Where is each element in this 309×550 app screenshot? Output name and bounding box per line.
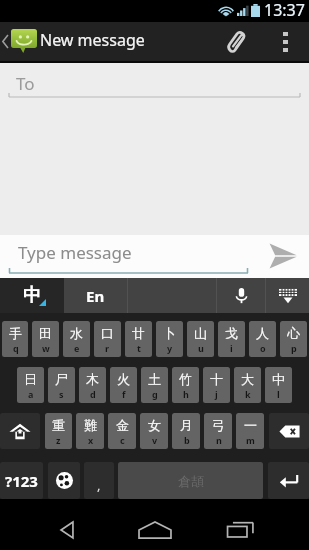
staticText: 火 — [117, 371, 130, 387]
button[interactable]: Recent apps — [199, 499, 287, 550]
button[interactable]: 火 — [110, 367, 137, 403]
button[interactable]: More options — [262, 22, 309, 61]
staticText: 難 — [84, 417, 97, 433]
staticText: i — [230, 342, 233, 354]
staticText: ?123 — [5, 471, 38, 491]
staticText: w — [42, 342, 50, 354]
staticText: u — [198, 342, 204, 354]
staticText: En — [86, 286, 105, 306]
button[interactable]: Send — [249, 235, 309, 278]
button[interactable]: 手 — [2, 321, 28, 357]
staticText: 13:37 — [264, 0, 305, 21]
button[interactable]: 十 — [203, 367, 230, 403]
button[interactable]: Back — [23, 499, 111, 550]
button[interactable]: 日 — [17, 367, 44, 403]
button[interactable]: 口 — [94, 321, 121, 357]
button[interactable]: En — [64, 278, 127, 313]
button[interactable]: 金 — [108, 413, 136, 449]
button[interactable]: 山 — [187, 321, 214, 357]
button[interactable]: 田 — [32, 321, 59, 357]
staticText: To — [16, 72, 35, 95]
staticText: 中 — [272, 371, 285, 387]
staticText: 山 — [194, 325, 207, 341]
staticText: 戈 — [225, 325, 238, 341]
staticText: e — [74, 342, 80, 354]
button[interactable]: ?123 — [0, 462, 43, 499]
button[interactable]: Enter — [268, 462, 309, 499]
staticText: 田 — [39, 325, 52, 341]
button[interactable]: 尸 — [48, 367, 75, 403]
button[interactable]: Shift — [0, 413, 40, 449]
staticText: 卜 — [163, 325, 176, 341]
button[interactable]: Voice input — [217, 278, 265, 313]
staticText: l — [277, 388, 280, 400]
staticText: t — [137, 342, 141, 354]
button[interactable]: 月 — [172, 413, 200, 449]
staticText: j — [215, 388, 218, 400]
staticText: 金 — [116, 417, 129, 433]
staticText: m — [246, 434, 255, 446]
staticText: Type message — [18, 241, 132, 264]
button[interactable]: 一 — [236, 413, 264, 449]
staticText: 手 — [9, 325, 22, 341]
button[interactable]: 難 — [76, 413, 104, 449]
staticText: 水 — [70, 325, 83, 341]
staticText: 一 — [244, 417, 257, 433]
staticText: 木 — [86, 371, 99, 387]
staticText: v — [152, 434, 158, 446]
staticText: f — [122, 388, 126, 400]
staticText: g — [152, 388, 158, 400]
button[interactable]: 木 — [79, 367, 106, 403]
button[interactable]: Change language — [48, 462, 80, 499]
staticText: , — [97, 476, 101, 494]
button[interactable]: 土 — [141, 367, 168, 403]
button[interactable]: , — [84, 462, 114, 499]
staticText: 倉頡 — [178, 473, 204, 489]
staticText: 月 — [180, 417, 193, 433]
staticText: 竹 — [179, 371, 192, 387]
staticText: 日 — [24, 371, 37, 387]
button[interactable]: 卜 — [156, 321, 183, 357]
staticText: p — [291, 342, 297, 354]
staticText: r — [105, 342, 110, 354]
button[interactable]: 弓 — [204, 413, 232, 449]
button[interactable]: 大 — [234, 367, 261, 403]
button[interactable]: Home — [111, 499, 199, 550]
staticText: q — [13, 342, 19, 354]
staticText: 重 — [52, 417, 65, 433]
staticText: h — [183, 388, 189, 400]
staticText: x — [88, 434, 94, 446]
button[interactable]: 中 — [0, 278, 64, 313]
staticText: 大 — [241, 371, 254, 387]
staticText: k — [245, 388, 251, 400]
staticText: s — [59, 388, 64, 400]
staticText: z — [56, 434, 61, 446]
button[interactable]: 重 — [45, 413, 72, 449]
button[interactable]: 廿 — [125, 321, 152, 357]
button[interactable]: Navigate up — [0, 22, 39, 61]
staticText: o — [260, 342, 266, 354]
staticText: 廿 — [132, 325, 145, 341]
button[interactable]: Backspace — [269, 413, 309, 449]
button[interactable]: 戈 — [218, 321, 245, 357]
staticText: 口 — [101, 325, 114, 341]
button[interactable]: 竹 — [172, 367, 199, 403]
button[interactable]: 水 — [63, 321, 90, 357]
staticText: b — [184, 434, 190, 446]
staticText: 弓 — [212, 417, 225, 433]
button[interactable]: 倉頡 — [118, 462, 263, 499]
button[interactable]: 女 — [140, 413, 168, 449]
staticText: 土 — [148, 371, 161, 387]
staticText: 十 — [210, 371, 223, 387]
button[interactable]: Hide keyboard — [266, 278, 309, 313]
staticText: New message — [40, 29, 145, 51]
staticText: y — [167, 342, 173, 354]
button[interactable]: 中 — [265, 367, 292, 403]
staticText: 尸 — [55, 371, 68, 387]
button[interactable]: 人 — [249, 321, 276, 357]
button[interactable]: Attach — [210, 22, 262, 61]
staticText: 女 — [148, 417, 161, 433]
staticText: d — [90, 388, 96, 400]
staticText: 人 — [256, 325, 269, 341]
button[interactable]: 心 — [280, 321, 307, 357]
